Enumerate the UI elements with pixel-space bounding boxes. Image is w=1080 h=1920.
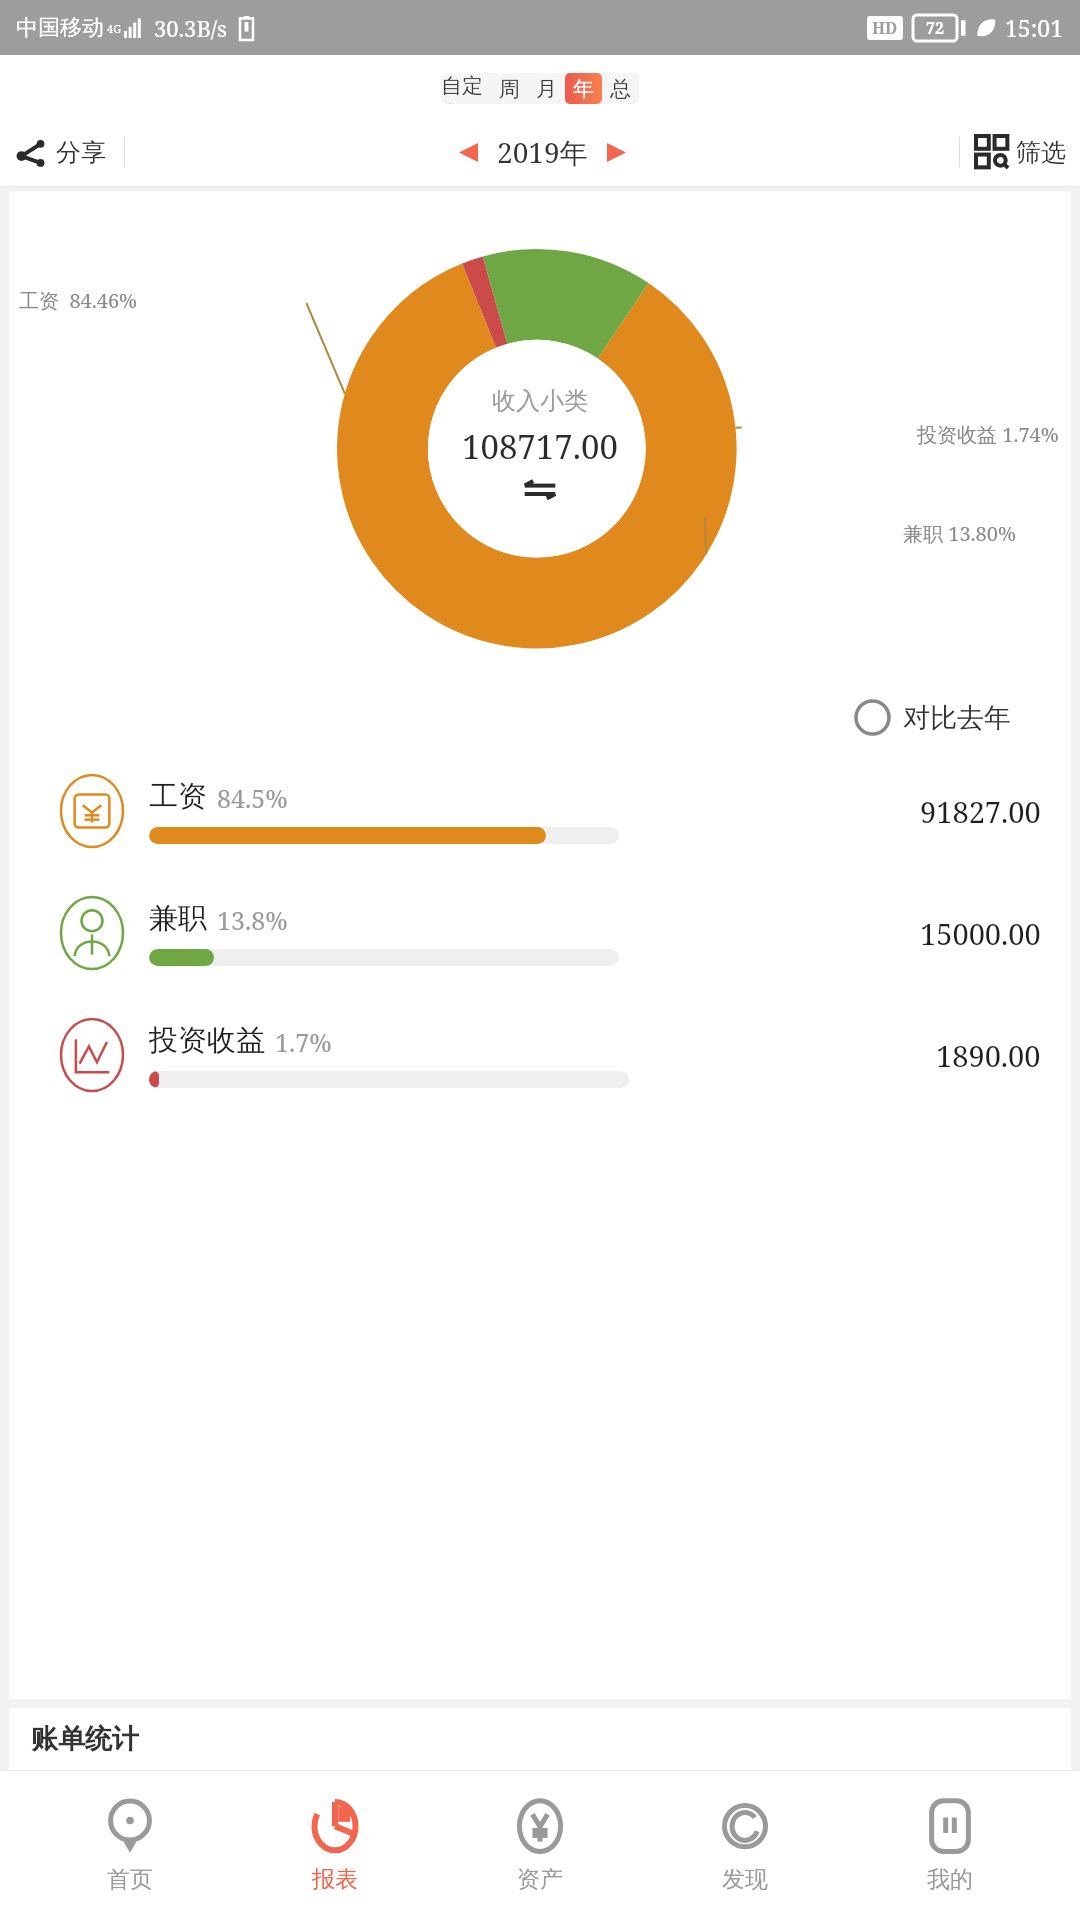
- staticText: 72: [926, 17, 945, 39]
- staticText: 工资 84.46%: [19, 287, 138, 314]
- button[interactable]: 月: [528, 73, 565, 104]
- staticText: 15000.00: [920, 914, 1041, 953]
- button[interactable]: 年: [565, 73, 602, 104]
- staticText: 13.8%: [217, 903, 288, 937]
- button[interactable]: 兼职: [9, 872, 1071, 994]
- staticText: 108717.00: [462, 424, 618, 469]
- button[interactable]: Next year: [601, 137, 632, 168]
- button[interactable]: 报表: [260, 1770, 410, 1920]
- staticText: 资产: [517, 1865, 563, 1894]
- staticText: 1890.00: [936, 1036, 1041, 1075]
- button[interactable]: 投资收益: [9, 994, 1071, 1116]
- staticText: 15:01: [1005, 12, 1064, 43]
- staticText: 账单统计: [31, 1722, 139, 1756]
- staticText: 收入小类: [492, 386, 588, 416]
- staticText: 发现: [722, 1865, 768, 1894]
- button[interactable]: 工资: [9, 750, 1071, 872]
- staticText: 我的: [927, 1865, 973, 1894]
- staticText: 1.7%: [275, 1025, 332, 1059]
- staticText: 周: [499, 76, 520, 102]
- staticText: 分享: [56, 137, 106, 168]
- button[interactable]: 我的: [875, 1770, 1025, 1920]
- staticText: 4G: [107, 21, 122, 36]
- button[interactable]: 首页: [55, 1770, 205, 1920]
- button[interactable]: 分享: [14, 135, 106, 169]
- button[interactable]: Previous year: [453, 137, 484, 168]
- staticText: 对比去年: [903, 701, 1011, 735]
- staticText: HD: [872, 17, 898, 39]
- staticText: 工资: [149, 778, 207, 815]
- button[interactable]: 资产: [465, 1770, 615, 1920]
- staticText: 2019年: [497, 133, 588, 171]
- staticText: 84.5%: [217, 781, 288, 815]
- button[interactable]: 发现: [670, 1770, 820, 1920]
- staticText: 91827.00: [920, 792, 1041, 831]
- staticText: 月: [536, 76, 557, 102]
- staticText: 年: [573, 76, 594, 102]
- staticText: 投资收益 1.74%: [917, 421, 1059, 448]
- staticText: 筛选: [1016, 137, 1066, 168]
- staticText: 兼职: [149, 900, 207, 937]
- button[interactable]: 周: [491, 73, 528, 104]
- button[interactable]: 总: [602, 73, 639, 104]
- button[interactable]: 筛选: [976, 136, 1066, 168]
- staticText: 报表: [312, 1865, 358, 1894]
- button[interactable]: 对比去年: [854, 699, 1011, 736]
- staticText: 自定义: [441, 73, 491, 104]
- staticText: 投资收益: [149, 1022, 265, 1059]
- staticText: 中国移动: [16, 14, 104, 42]
- staticText: 总: [610, 76, 631, 102]
- staticText: 兼职 13.80%: [903, 520, 1016, 547]
- staticText: 30.3B/s: [154, 13, 228, 43]
- button[interactable]: Switch: [523, 479, 557, 499]
- button[interactable]: 自定义: [441, 73, 491, 104]
- staticText: 首页: [107, 1865, 153, 1894]
